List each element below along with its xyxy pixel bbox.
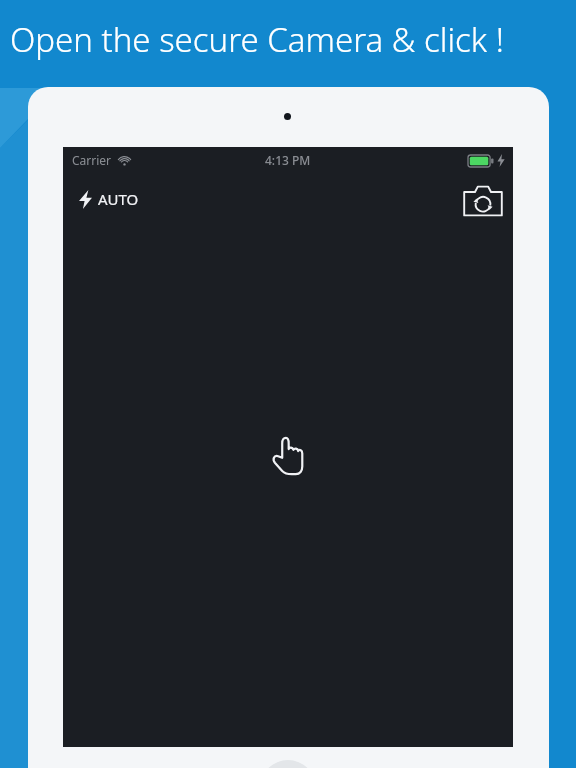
staticText: Carrier	[72, 152, 112, 168]
staticText: Open the secure Camera & click !	[10, 17, 504, 62]
button[interactable]: Switch camera	[459, 181, 507, 221]
staticText: AUTO	[98, 189, 139, 209]
button[interactable]: AUTO	[73, 185, 145, 213]
staticText: 4:13 PM	[265, 152, 311, 168]
